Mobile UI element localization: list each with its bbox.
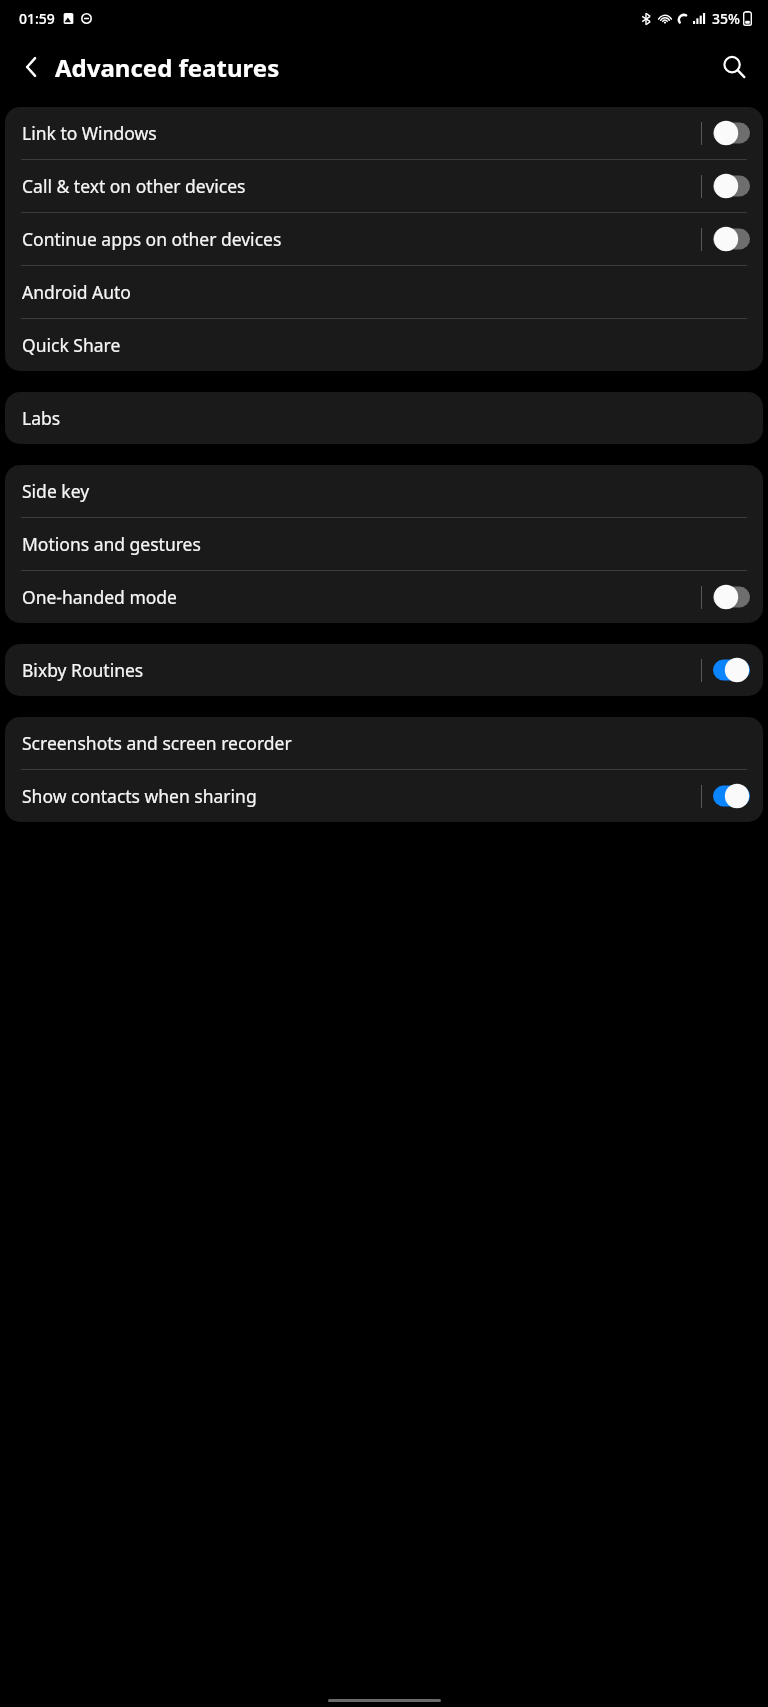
staticText: One-handed mode	[22, 585, 695, 609]
staticText: Labs	[22, 406, 743, 430]
button[interactable]: Quick Share	[5, 319, 763, 371]
button[interactable]: Show contacts when sharing	[713, 783, 750, 809]
staticText: 01:59	[19, 9, 55, 28]
staticText: Call & text on other devices	[22, 174, 695, 198]
staticText: Show contacts when sharing	[22, 784, 695, 808]
staticText: 35%	[712, 9, 740, 28]
staticText: Side key	[22, 479, 743, 503]
button[interactable]: Link to Windows	[713, 120, 750, 146]
staticText: Quick Share	[22, 333, 743, 357]
button[interactable]: Labs	[5, 392, 763, 444]
button[interactable]: Link to Windows	[5, 107, 763, 159]
staticText: Advanced features	[55, 51, 712, 84]
staticText: Screenshots and screen recorder	[22, 731, 743, 755]
staticText: Android Auto	[22, 280, 743, 304]
button[interactable]: Call & text on other devices	[5, 160, 763, 212]
button[interactable]: Show contacts when sharing	[5, 770, 763, 822]
button[interactable]: Screenshots and screen recorder	[5, 717, 763, 769]
staticText: Continue apps on other devices	[22, 227, 695, 251]
button[interactable]: Bixby Routines	[713, 657, 750, 683]
button[interactable]: Bixby Routines	[5, 644, 763, 696]
staticText: Link to Windows	[22, 121, 695, 145]
button[interactable]: One-handed mode	[5, 571, 763, 623]
button[interactable]: Motions and gestures	[5, 518, 763, 570]
button[interactable]: Continue apps on other devices	[713, 226, 750, 252]
button[interactable]: Call & text on other devices	[713, 173, 750, 199]
staticText: Motions and gestures	[22, 532, 743, 556]
staticText: Bixby Routines	[22, 658, 695, 682]
button[interactable]: Back	[11, 46, 53, 88]
button[interactable]: Side key	[5, 465, 763, 517]
button[interactable]: One-handed mode	[713, 584, 750, 610]
button[interactable]: Search	[712, 45, 756, 89]
button[interactable]: Continue apps on other devices	[5, 213, 763, 265]
button[interactable]: Android Auto	[5, 266, 763, 318]
